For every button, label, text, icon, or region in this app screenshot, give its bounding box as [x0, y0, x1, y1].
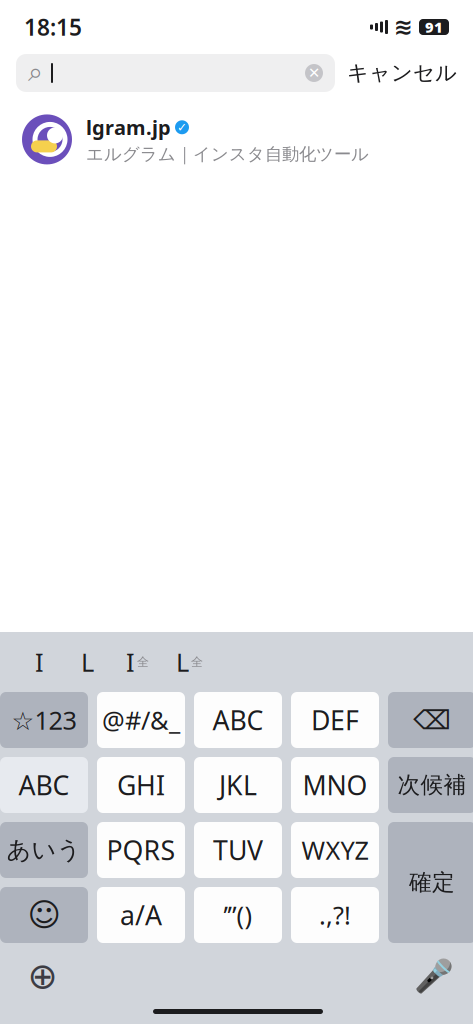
button[interactable]: あいう — [0, 822, 88, 878]
staticText: lgram.jp — [86, 114, 171, 141]
staticText: ☺ — [27, 897, 60, 933]
staticText: .,?! — [319, 898, 351, 932]
staticText: ⊕ — [27, 956, 57, 996]
staticText: ABC — [212, 702, 263, 738]
staticText: a/A — [120, 897, 162, 933]
staticText: ⌕ — [28, 60, 43, 86]
staticText: 🎤 — [413, 958, 453, 994]
button[interactable]: MNO — [291, 757, 379, 813]
button[interactable]: I — [111, 640, 163, 684]
button[interactable]: lgram.jp — [0, 108, 473, 171]
staticText: I — [35, 645, 44, 679]
staticText: ≋ — [394, 14, 413, 40]
staticText: ✓ — [177, 120, 187, 134]
button[interactable]: ☺ — [0, 887, 88, 943]
staticText: キャンセル — [347, 60, 457, 86]
button[interactable]: ABC — [194, 692, 282, 748]
staticText: I — [126, 645, 135, 679]
staticText: MNO — [302, 767, 367, 803]
button[interactable]: @#/&_ — [97, 692, 185, 748]
button[interactable]: L — [63, 640, 111, 684]
staticText: JKL — [219, 767, 257, 803]
button[interactable]: WXYZ — [291, 822, 379, 878]
staticText: あいう — [6, 835, 81, 865]
staticText: GHI — [117, 767, 165, 803]
staticText: ☆123 — [11, 703, 76, 737]
staticText: 次候補 — [397, 771, 466, 799]
button[interactable]: ☆123 — [0, 692, 88, 748]
button[interactable]: I — [15, 640, 63, 684]
staticText: 91 — [425, 17, 443, 37]
button[interactable]: 次候補 — [388, 757, 473, 813]
staticText: PQRS — [106, 832, 175, 868]
button[interactable]: PQRS — [97, 822, 185, 878]
staticText: ’”() — [223, 898, 252, 932]
button[interactable]: .,?! — [291, 887, 379, 943]
staticText: 18:15 — [24, 12, 82, 42]
staticText: @#/&_ — [102, 703, 180, 737]
staticText: L — [176, 645, 189, 679]
staticText: 全 — [191, 655, 203, 669]
button[interactable]: L — [163, 640, 215, 684]
staticText: DEF — [311, 702, 359, 738]
staticText: TUV — [213, 832, 263, 868]
staticText: ✕ — [308, 65, 320, 81]
staticText: ⌫ — [413, 705, 451, 735]
button[interactable]: a/A — [97, 887, 185, 943]
button[interactable]: DEF — [291, 692, 379, 748]
button[interactable]: Switch keyboard — [17, 951, 67, 1001]
staticText: WXYZ — [301, 833, 368, 867]
staticText: エルグラム｜インスタ自動化ツール — [86, 144, 369, 165]
staticText: ABC — [18, 767, 69, 803]
button[interactable]: GHI — [97, 757, 185, 813]
button[interactable]: ⌫ — [388, 692, 473, 748]
staticText: L — [81, 645, 94, 679]
button[interactable]: ⌕ — [16, 54, 335, 92]
staticText: 全 — [137, 655, 149, 669]
button[interactable]: JKL — [194, 757, 282, 813]
button[interactable]: TUV — [194, 822, 282, 878]
button[interactable]: 確定 — [388, 822, 473, 943]
button[interactable]: ABC — [0, 757, 88, 813]
button[interactable]: キャンセル — [347, 60, 457, 86]
staticText: 確定 — [409, 869, 455, 896]
button[interactable]: Dictation — [408, 951, 458, 1001]
button[interactable]: ’”() — [194, 887, 282, 943]
